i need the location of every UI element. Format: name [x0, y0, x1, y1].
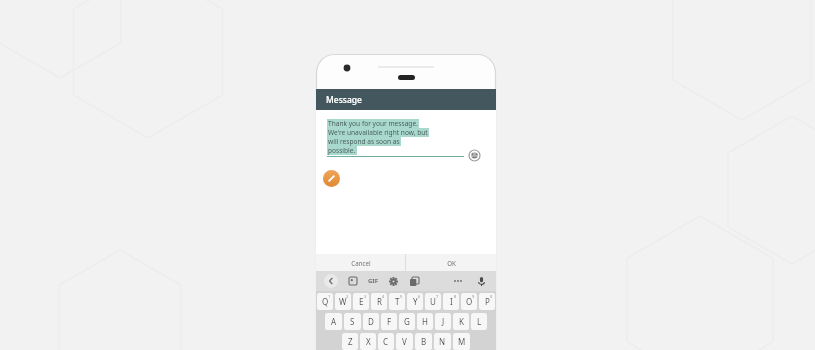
staticText: R: [377, 296, 382, 307]
button[interactable]: G: [399, 313, 415, 330]
button[interactable]: S: [344, 313, 361, 330]
button[interactable]: P: [479, 293, 495, 310]
staticText: 1: [328, 294, 331, 299]
button[interactable]: OK: [406, 254, 496, 271]
staticText: P: [485, 296, 490, 307]
staticText: Thank you for your message.: [328, 119, 418, 128]
button[interactable]: Insert emoji: [468, 149, 481, 162]
button[interactable]: L: [471, 313, 487, 330]
staticText: U: [430, 296, 436, 307]
staticText: 2: [346, 294, 349, 299]
staticText: D: [368, 316, 374, 327]
staticText: V: [402, 336, 407, 347]
button[interactable]: E: [353, 293, 369, 310]
staticText: Q: [322, 296, 329, 307]
staticText: 9: [472, 294, 475, 299]
button[interactable]: U: [425, 293, 441, 310]
button[interactable]: Images: [408, 275, 420, 287]
staticText: 6: [418, 294, 421, 299]
button[interactable]: Stickers: [347, 275, 359, 287]
button[interactable]: X: [360, 333, 376, 350]
button[interactable]: W: [335, 293, 351, 310]
staticText: 0: [490, 294, 493, 299]
staticText: T: [395, 296, 400, 307]
button[interactable]: O: [461, 293, 477, 310]
staticText: C: [383, 336, 389, 347]
button[interactable]: A: [325, 313, 342, 330]
staticText: H: [422, 316, 428, 327]
button[interactable]: B: [415, 333, 432, 350]
button[interactable]: M: [453, 333, 470, 350]
staticText: We're unavailable right now, but: [328, 128, 428, 137]
staticText: OK: [447, 259, 456, 267]
staticText: GIF: [368, 277, 378, 285]
staticText: X: [366, 336, 371, 347]
staticText: N: [439, 336, 446, 347]
button[interactable]: Q: [317, 293, 333, 310]
staticText: Message: [326, 94, 362, 106]
button[interactable]: More options: [451, 274, 465, 288]
staticText: Y: [413, 296, 418, 307]
staticText: J: [442, 316, 445, 327]
button[interactable]: K: [453, 313, 469, 330]
button[interactable]: C: [378, 333, 394, 350]
staticText: 7: [436, 294, 439, 299]
button[interactable]: D: [363, 313, 379, 330]
staticText: I: [450, 296, 453, 307]
staticText: K: [459, 316, 464, 327]
staticText: 3: [364, 294, 367, 299]
staticText: B: [421, 336, 427, 347]
staticText: S: [350, 316, 355, 327]
staticText: M: [458, 336, 466, 347]
button[interactable]: J: [435, 313, 451, 330]
staticText: E: [359, 296, 364, 307]
button[interactable]: I: [443, 293, 459, 310]
button[interactable]: N: [434, 333, 451, 350]
button[interactable]: Back: [324, 274, 338, 288]
staticText: F: [387, 316, 392, 327]
staticText: 5: [400, 294, 403, 299]
staticText: A: [331, 316, 337, 327]
button[interactable]: Edit message: [323, 170, 340, 187]
staticText: 8: [454, 294, 457, 299]
staticText: Z: [348, 336, 353, 347]
button[interactable]: T: [389, 293, 405, 310]
staticText: Cancel: [351, 259, 371, 267]
button[interactable]: Message: [316, 89, 496, 110]
button[interactable]: H: [417, 313, 433, 330]
button[interactable]: F: [381, 313, 397, 330]
button[interactable]: Voice input: [475, 275, 488, 288]
button[interactable]: GIF: [368, 277, 378, 285]
staticText: O: [466, 296, 473, 307]
staticText: will respond as soon as: [328, 137, 400, 146]
staticText: W: [339, 296, 347, 307]
button[interactable]: Y: [407, 293, 423, 310]
button[interactable]: R: [371, 293, 387, 310]
button[interactable]: Z: [342, 333, 358, 350]
button[interactable]: V: [396, 333, 413, 350]
button[interactable]: Cancel: [316, 254, 405, 271]
staticText: 4: [382, 294, 385, 299]
button[interactable]: Settings: [387, 275, 399, 287]
staticText: possible.: [328, 146, 356, 155]
staticText: L: [477, 316, 482, 327]
staticText: G: [404, 316, 410, 327]
